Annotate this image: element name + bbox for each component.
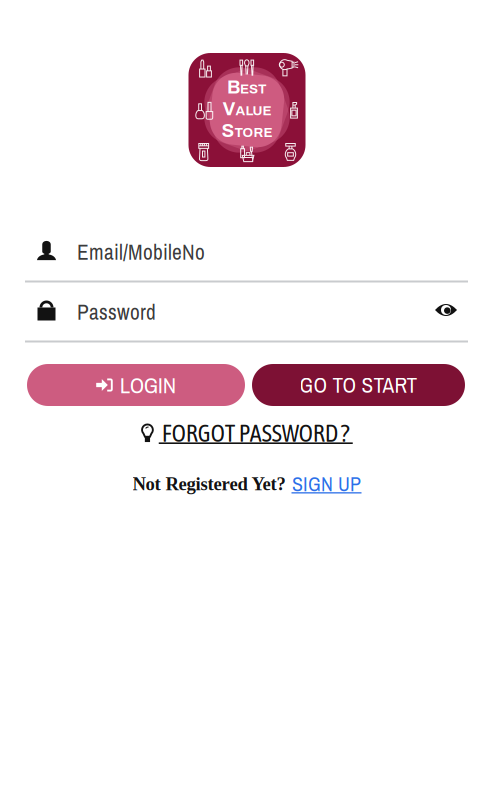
staticText: Not Registered Yet? (132, 474, 285, 494)
button[interactable]: SIGN UP (291, 474, 361, 494)
staticText: Password (77, 298, 156, 326)
staticText: LOGIN (120, 370, 176, 400)
button[interactable]: FORGOT PASSWORD ? (141, 420, 353, 446)
staticText: VALUE (222, 99, 271, 119)
button[interactable]: GO TO START (252, 364, 465, 406)
staticText: FORGOT PASSWORD ? (162, 419, 350, 447)
staticText: GO TO START (299, 371, 417, 399)
staticText: Email/MobileNo (77, 238, 205, 266)
staticText: SIGN UP (292, 470, 361, 497)
button[interactable]: Show password (426, 293, 466, 327)
staticText: STORE (221, 121, 272, 141)
staticText: BEST (227, 77, 267, 97)
button[interactable]: LOGIN (27, 364, 245, 406)
